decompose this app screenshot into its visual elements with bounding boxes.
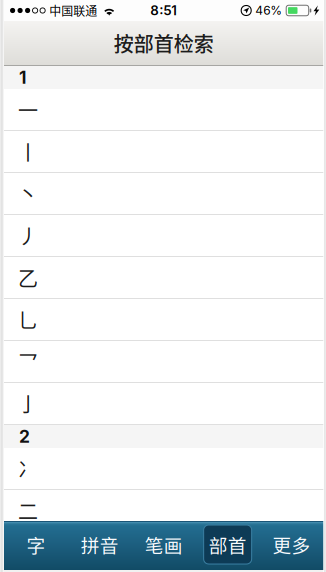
staticText: 2: [19, 426, 30, 447]
button[interactable]: 笔画: [132, 522, 196, 570]
staticText: 丶: [18, 179, 38, 208]
button[interactable]: 字: [4, 522, 68, 570]
staticText: 部首: [209, 531, 247, 558]
button[interactable]: 乛: [4, 341, 323, 383]
button[interactable]: 部首: [196, 522, 260, 570]
staticText: 一: [18, 95, 38, 124]
staticText: 丿: [18, 221, 38, 250]
staticText: 中国联通: [49, 2, 97, 19]
staticText: 乛: [18, 347, 38, 376]
staticText: 字: [26, 531, 45, 558]
button[interactable]: 亠: [4, 532, 323, 572]
staticText: 二: [18, 496, 38, 525]
button[interactable]: 二: [4, 490, 323, 532]
staticText: 亠: [18, 538, 38, 567]
button[interactable]: 丿: [4, 215, 323, 257]
button[interactable]: 乙: [4, 257, 323, 299]
staticText: 冫: [18, 454, 38, 483]
staticText: 46%: [255, 3, 282, 18]
staticText: 乚: [18, 305, 38, 334]
staticText: 8:51: [150, 2, 177, 18]
button[interactable]: 一: [4, 89, 323, 131]
button[interactable]: 丶: [4, 173, 323, 215]
button[interactable]: 冫: [4, 448, 323, 490]
staticText: 丨: [18, 137, 38, 166]
staticText: 亅: [18, 389, 38, 418]
staticText: 拼音: [81, 531, 119, 558]
button[interactable]: 乚: [4, 299, 323, 341]
staticText: 1: [19, 67, 26, 88]
button[interactable]: 丨: [4, 131, 323, 173]
button[interactable]: 亅: [4, 383, 323, 425]
staticText: 按部首检索: [114, 28, 214, 57]
staticText: 乙: [18, 263, 38, 292]
staticText: 更多: [273, 531, 311, 558]
button[interactable]: 拼音: [68, 522, 132, 570]
button[interactable]: 更多: [260, 522, 323, 570]
staticText: 笔画: [145, 531, 183, 558]
